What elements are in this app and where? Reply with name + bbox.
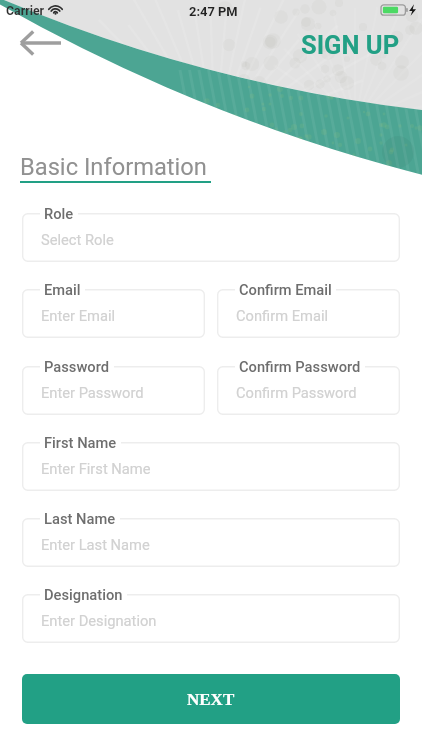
button[interactable]: Confirm Email [217, 289, 400, 338]
staticText: Enter First Name [41, 460, 151, 477]
staticText: Enter Email [41, 307, 116, 324]
staticText: First Name [44, 434, 117, 451]
staticText: Confirm Email [239, 281, 332, 298]
staticText: 2:47 PM [189, 4, 238, 19]
button[interactable]: Back [14, 26, 68, 60]
button[interactable]: Last Name [22, 518, 400, 567]
staticText: Enter Last Name [41, 536, 150, 553]
button[interactable]: NEXT [22, 674, 400, 724]
staticText: Carrier [6, 4, 45, 18]
button[interactable]: First Name [22, 442, 400, 491]
staticText: Role [44, 205, 74, 222]
staticText: Basic Information [20, 153, 207, 181]
staticText: Select Role [41, 231, 114, 248]
button[interactable]: Password [22, 366, 205, 415]
staticText: Designation [44, 586, 123, 603]
button[interactable]: Role [22, 213, 400, 262]
staticText: Last Name [44, 510, 116, 527]
staticText: NEXT [187, 690, 235, 709]
staticText: Confirm Password [236, 384, 357, 401]
button[interactable]: Email [22, 289, 205, 338]
staticText: Confirm Email [236, 307, 329, 324]
staticText: Confirm Password [239, 358, 361, 375]
button[interactable]: SIGN UP [301, 30, 400, 60]
button[interactable]: Confirm Password [217, 366, 400, 415]
staticText: Enter Designation [41, 612, 157, 629]
staticText: Email [44, 281, 81, 298]
staticText: Enter Password [41, 384, 144, 401]
button[interactable]: Designation [22, 594, 400, 643]
staticText: Password [44, 358, 110, 375]
staticText: SIGN UP [301, 30, 400, 60]
